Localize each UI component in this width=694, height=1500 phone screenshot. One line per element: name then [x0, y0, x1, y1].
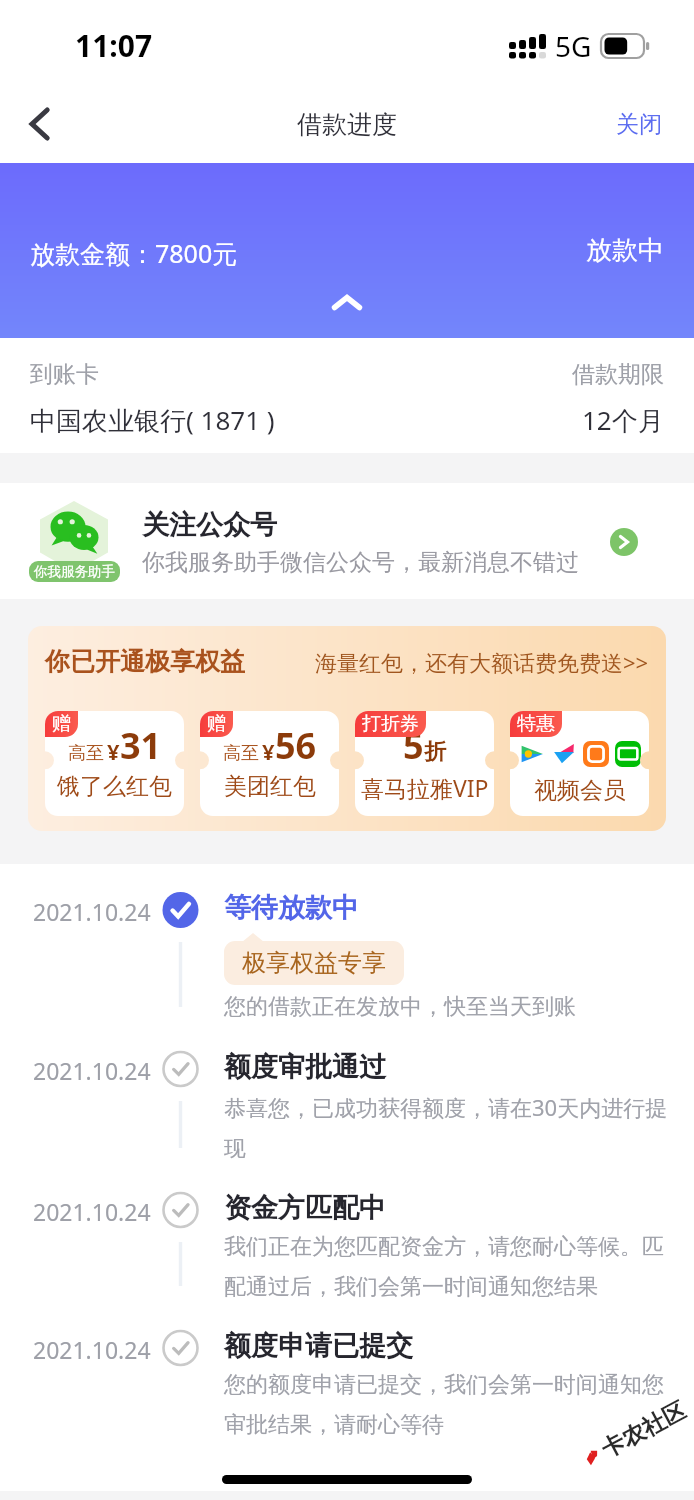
staticText: 你已开通极享权益 [45, 646, 245, 677]
button[interactable]: 你我服务助手 [0, 483, 694, 599]
button[interactable]: 高至 [200, 711, 339, 816]
staticText: 额度审批通过 [224, 1050, 386, 1084]
staticText: 等待放款中 [224, 891, 359, 925]
staticText: 2021.10.24 [33, 896, 161, 927]
staticText: 特惠 [517, 712, 555, 736]
button[interactable]: 极享权益专享 [224, 941, 404, 985]
button[interactable]: 关闭 [584, 88, 694, 161]
button[interactable]: 放款金额：7800元 [0, 163, 694, 338]
staticText: 高至 [223, 742, 259, 765]
staticText: 到账卡 [30, 360, 99, 389]
staticText: 折 [424, 738, 446, 766]
staticText: 极享权益专享 [242, 948, 386, 978]
staticText: 借款期限 [572, 360, 664, 389]
staticText: 我们正在为您匹配资金方，请您耐心等候。匹配通过后，我们会第一时间通知您结果 [224, 1233, 670, 1300]
staticText: 美团红包 [224, 772, 316, 801]
staticText: 您的额度申请已提交，我们会第一时间通知您审批结果，请耐心等待 [224, 1371, 670, 1438]
staticText: 打折券 [362, 712, 419, 736]
staticText: 你我服务助手 [34, 563, 115, 580]
staticText: 5G [555, 27, 592, 65]
staticText: 喜马拉雅VIP [361, 772, 489, 803]
staticText: 放款金额：7800元 [30, 236, 238, 270]
staticText: 56 [275, 721, 317, 770]
staticText: 赠 [207, 712, 226, 736]
staticText: 关闭 [616, 110, 662, 139]
staticText: ¥ [262, 736, 275, 766]
staticText: 31 [120, 721, 162, 770]
staticText: 12个月 [582, 402, 664, 438]
staticText: 11:07 [75, 25, 153, 66]
staticText: 放款中 [586, 234, 664, 267]
staticText: 卡农社区 [596, 1396, 690, 1464]
staticText: 视频会员 [534, 776, 626, 805]
button[interactable]: Follow [610, 528, 638, 556]
staticText: 借款进度 [297, 109, 397, 140]
staticText: 饿了么红包 [57, 772, 172, 801]
staticText: 关注公众号 [142, 508, 277, 542]
staticText: 2021.10.24 [33, 1196, 161, 1227]
staticText: 您的借款正在发放中，快至当天到账 [224, 993, 576, 1021]
button[interactable]: Back [0, 85, 80, 163]
staticText: 海量红包，还有大额话费免费送>> [315, 647, 649, 677]
staticText: 额度申请已提交 [224, 1329, 413, 1363]
staticText: 高至 [68, 742, 104, 765]
staticText: 你我服务助手微信公众号，最新消息不错过 [142, 548, 579, 577]
staticText: 赠 [52, 712, 71, 736]
staticText: 恭喜您，已成功获得额度，请在30天内进行提现 [224, 1092, 670, 1162]
button[interactable]: 2021.10.24 [0, 1023, 694, 1164]
button[interactable]: 2021.10.24 [0, 1302, 694, 1440]
button[interactable]: 视频会员 [510, 711, 649, 816]
button[interactable]: 高至 [45, 711, 184, 816]
button[interactable]: 你已开通极享权益 [28, 626, 666, 831]
button[interactable]: 2021.10.24 [0, 1164, 694, 1302]
staticText: 资金方匹配中 [224, 1191, 386, 1225]
staticText: 5 [403, 721, 424, 770]
staticText: 中国农业银行( 1871 ) [30, 402, 275, 438]
button[interactable]: 5 [355, 711, 494, 816]
staticText: ¥ [107, 736, 120, 766]
staticText: 2021.10.24 [33, 1055, 161, 1086]
staticText: 2021.10.24 [33, 1334, 161, 1365]
button[interactable]: 2021.10.24 [0, 864, 694, 1023]
